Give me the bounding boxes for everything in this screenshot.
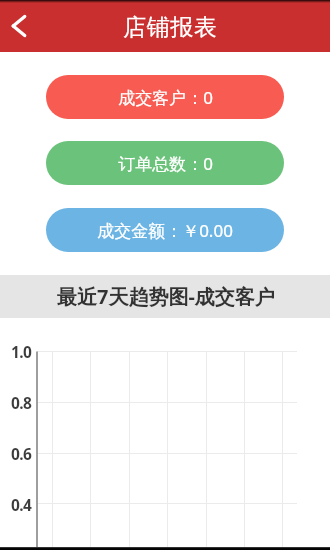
staticText: 0.6: [11, 443, 32, 464]
staticText: 成交金额：￥0.00: [97, 219, 233, 242]
button[interactable]: 订单总数：0: [46, 141, 284, 185]
staticText: 最近7天趋势图-成交客户: [57, 283, 275, 310]
button[interactable]: Back: [0, 0, 36, 52]
button[interactable]: 成交金额：￥0.00: [46, 208, 284, 252]
staticText: 成交客户：0: [118, 86, 213, 109]
staticText: 0.4: [11, 494, 32, 515]
staticText: 0.8: [11, 392, 32, 413]
staticText: 订单总数：0: [118, 152, 213, 175]
staticText: 店铺报表: [123, 13, 217, 42]
staticText: 1.0: [11, 341, 32, 362]
button[interactable]: 成交客户：0: [46, 75, 284, 119]
